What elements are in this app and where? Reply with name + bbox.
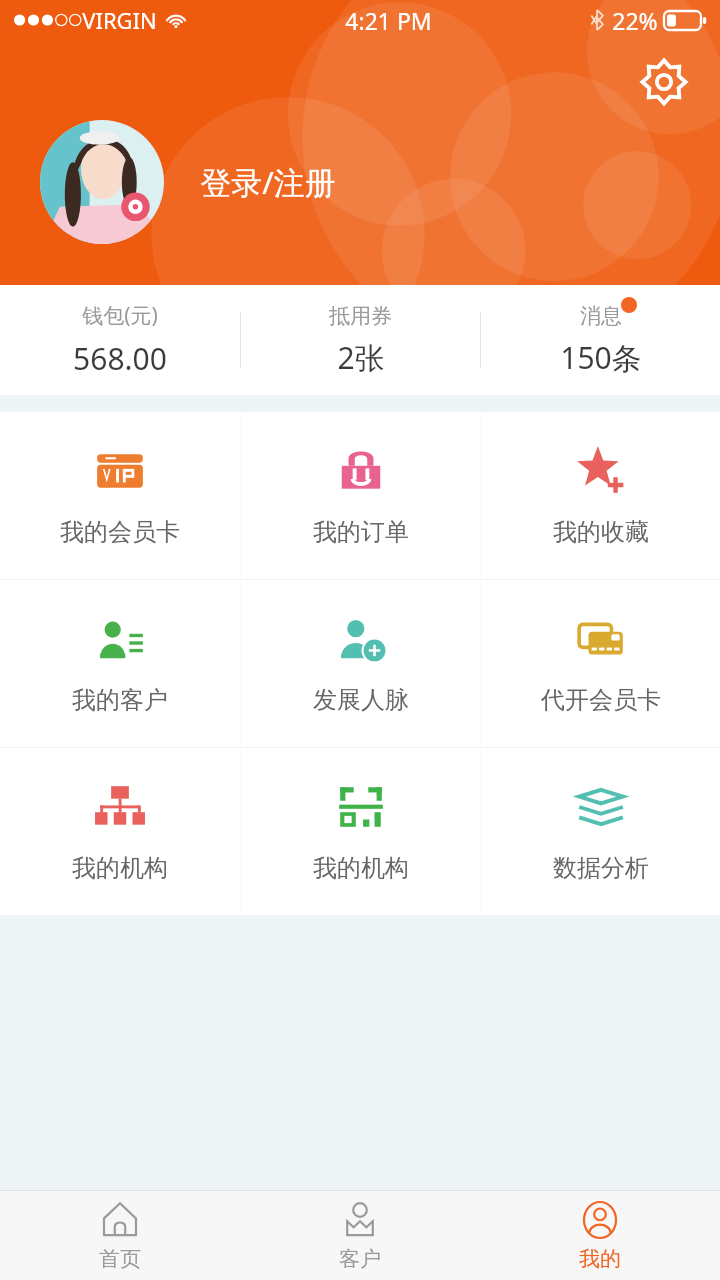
staticText: 我的收藏 (553, 517, 649, 547)
button[interactable]: 发展人脉 (241, 580, 480, 747)
staticText: 我的 (579, 1246, 621, 1272)
staticText: 登录/注册 (200, 161, 336, 203)
button[interactable]: Settings (634, 52, 694, 112)
staticText: 我的客户 (72, 685, 168, 715)
button[interactable]: 我的订单 (241, 412, 480, 579)
staticText: 发展人脉 (313, 685, 409, 715)
staticText: 我的机构 (72, 853, 168, 883)
staticText: 代开会员卡 (541, 685, 661, 715)
button[interactable]: 我的会员卡 (0, 412, 240, 579)
staticText: 消息 (580, 303, 622, 329)
staticText: 我的会员卡 (60, 517, 180, 547)
button[interactable]: 消息 (481, 285, 720, 395)
staticText: 150条 (560, 337, 642, 378)
staticText: 4:21 PM (345, 5, 432, 36)
button[interactable]: 数据分析 (481, 748, 720, 915)
button[interactable]: 首页 (0, 1191, 240, 1280)
button[interactable]: 客户 (240, 1191, 480, 1280)
button[interactable]: 登录/注册 (40, 120, 336, 244)
button[interactable]: 钱包(元) (0, 285, 240, 395)
button[interactable]: 我的客户 (0, 580, 240, 747)
staticText: VIRGIN (82, 5, 157, 35)
staticText: 2张 (337, 337, 385, 378)
button[interactable]: 抵用券 (241, 285, 480, 395)
staticText: 数据分析 (553, 853, 649, 883)
button[interactable]: 我的机构 (241, 748, 480, 915)
staticText: 22% (612, 5, 658, 36)
button[interactable]: 我的 (480, 1191, 720, 1280)
staticText: 568.00 (73, 338, 167, 379)
staticText: 我的机构 (313, 853, 409, 883)
button[interactable]: 代开会员卡 (481, 580, 720, 747)
staticText: 钱包(元) (82, 301, 158, 330)
staticText: 首页 (99, 1246, 141, 1272)
staticText: 我的订单 (313, 517, 409, 547)
staticText: 抵用券 (329, 303, 392, 329)
button[interactable]: 我的机构 (0, 748, 240, 915)
button[interactable]: 我的收藏 (481, 412, 720, 579)
staticText: 客户 (339, 1246, 381, 1272)
